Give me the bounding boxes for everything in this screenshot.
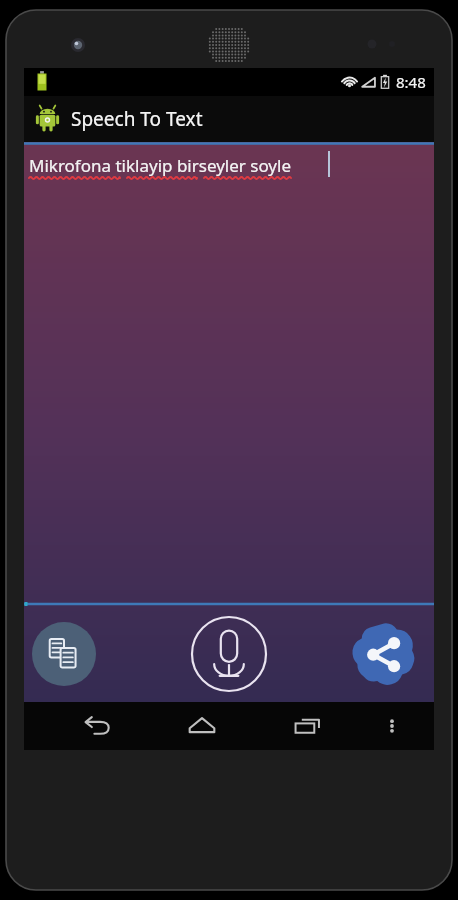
button[interactable]: Start speech recognition <box>190 615 268 693</box>
staticText: 8:48 <box>396 72 426 92</box>
staticText: Mikrofona tiklayip birseyler soyle <box>29 154 291 177</box>
staticText: Speech To Text <box>71 106 203 132</box>
button[interactable]: Recent apps <box>272 702 342 750</box>
button[interactable]: Share <box>348 618 420 690</box>
button[interactable]: Home <box>167 702 237 750</box>
button[interactable]: More options <box>367 702 416 750</box>
button[interactable]: Copy text <box>32 622 96 686</box>
button[interactable]: Back <box>62 702 132 750</box>
button[interactable]: Speech To Text <box>24 96 434 142</box>
